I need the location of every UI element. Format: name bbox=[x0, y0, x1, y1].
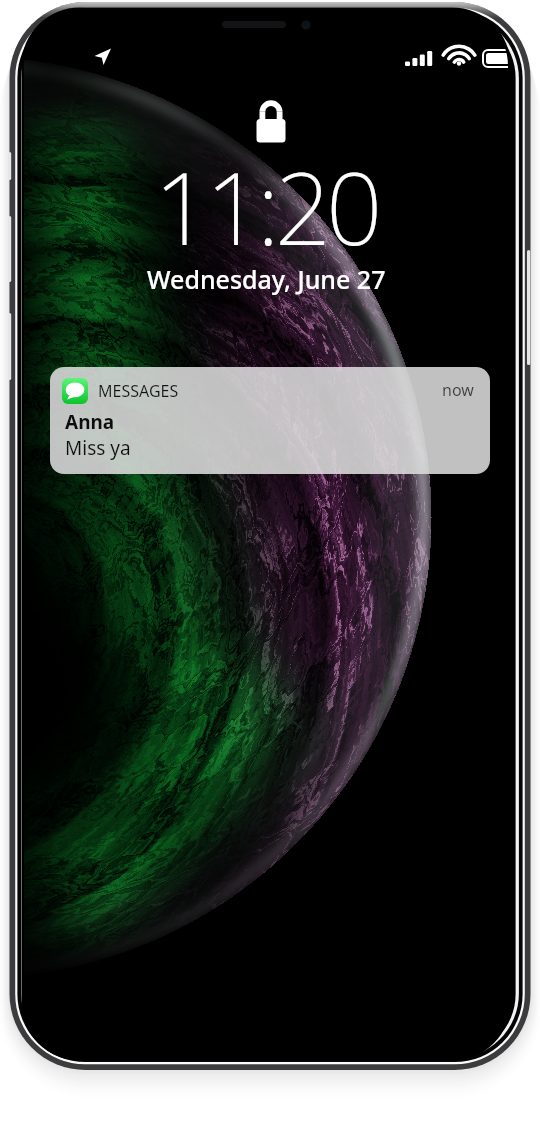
staticText: 11:20 bbox=[154, 139, 378, 274]
staticText: Wednesday, June 27 bbox=[147, 262, 386, 296]
staticText: Anna bbox=[65, 409, 115, 435]
staticText: now bbox=[442, 379, 474, 401]
staticText: Miss ya bbox=[65, 435, 131, 461]
button[interactable]: MESSAGES bbox=[50, 367, 490, 474]
staticText: MESSAGES bbox=[98, 380, 179, 402]
other: Locked bbox=[256, 100, 286, 143]
